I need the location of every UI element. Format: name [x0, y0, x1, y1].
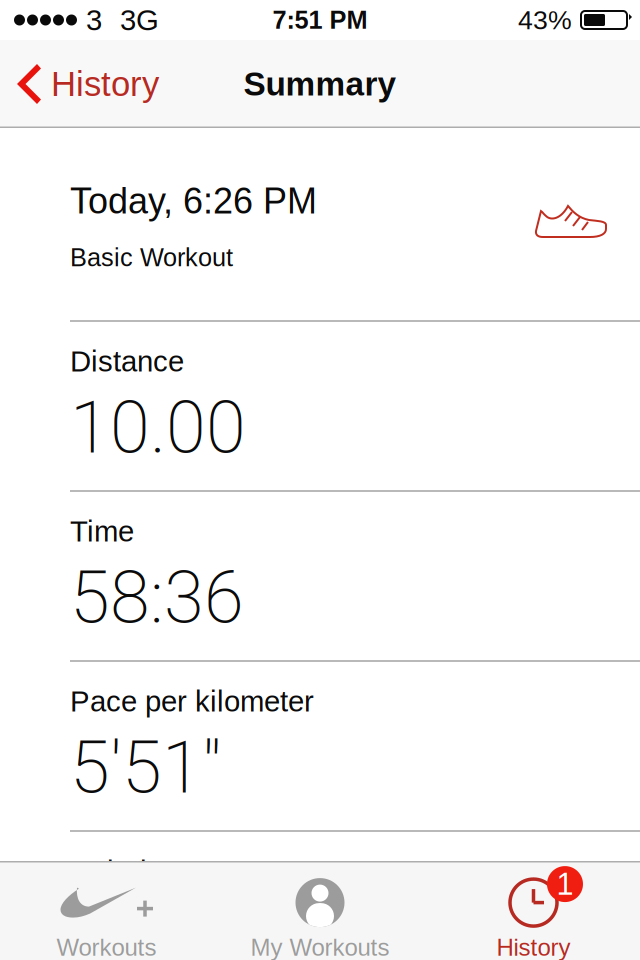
- staticText: Today, 6:26 PM: [70, 181, 317, 221]
- staticText: Basic Workout: [70, 243, 233, 271]
- staticText: Calories: [70, 855, 178, 888]
- button[interactable]: Workouts: [0, 861, 213, 960]
- staticText: 3: [86, 4, 102, 36]
- staticText: My Workouts: [250, 934, 389, 960]
- staticText: History: [496, 934, 570, 960]
- staticText: 3G: [120, 4, 159, 36]
- staticText: Pace per kilometer: [70, 685, 314, 718]
- staticText: 58:36: [70, 556, 244, 640]
- button[interactable]: History: [0, 40, 173, 128]
- staticText: 43%: [518, 5, 572, 35]
- staticText: Summary: [243, 65, 396, 103]
- staticText: 1: [556, 867, 573, 901]
- button[interactable]: History: [427, 861, 640, 960]
- staticText: Workouts: [56, 934, 156, 960]
- staticText: 5'51": [70, 726, 221, 810]
- button[interactable]: My Workouts: [213, 861, 427, 960]
- staticText: 7:51 PM: [272, 6, 367, 34]
- staticText: Time: [70, 515, 134, 548]
- staticText: Distance: [70, 345, 184, 378]
- staticText: History: [51, 65, 159, 103]
- staticText: 10.00: [70, 386, 246, 470]
